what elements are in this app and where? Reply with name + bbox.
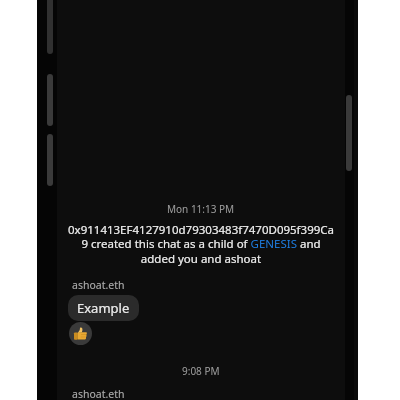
staticText: ashoat.eth (72, 387, 125, 400)
staticText: 0x911413EF4127910d79303483f7470D095f399C… (67, 222, 335, 267)
button[interactable]: Thumbs up reaction (69, 322, 92, 345)
button[interactable]: Volume down (47, 134, 53, 186)
button[interactable]: Side button (47, 0, 53, 54)
button[interactable]: Volume up (47, 74, 53, 126)
button[interactable]: Power (346, 95, 352, 171)
staticText: Mon 11:13 PM (167, 202, 235, 216)
button[interactable]: 0x911413EF4127910d79303483f7470D095f399C… (67, 222, 335, 267)
staticText: ashoat.eth (72, 278, 125, 292)
button[interactable]: Example (68, 295, 139, 321)
staticText: Example (77, 299, 130, 317)
staticText: 9:08 PM (182, 364, 220, 378)
